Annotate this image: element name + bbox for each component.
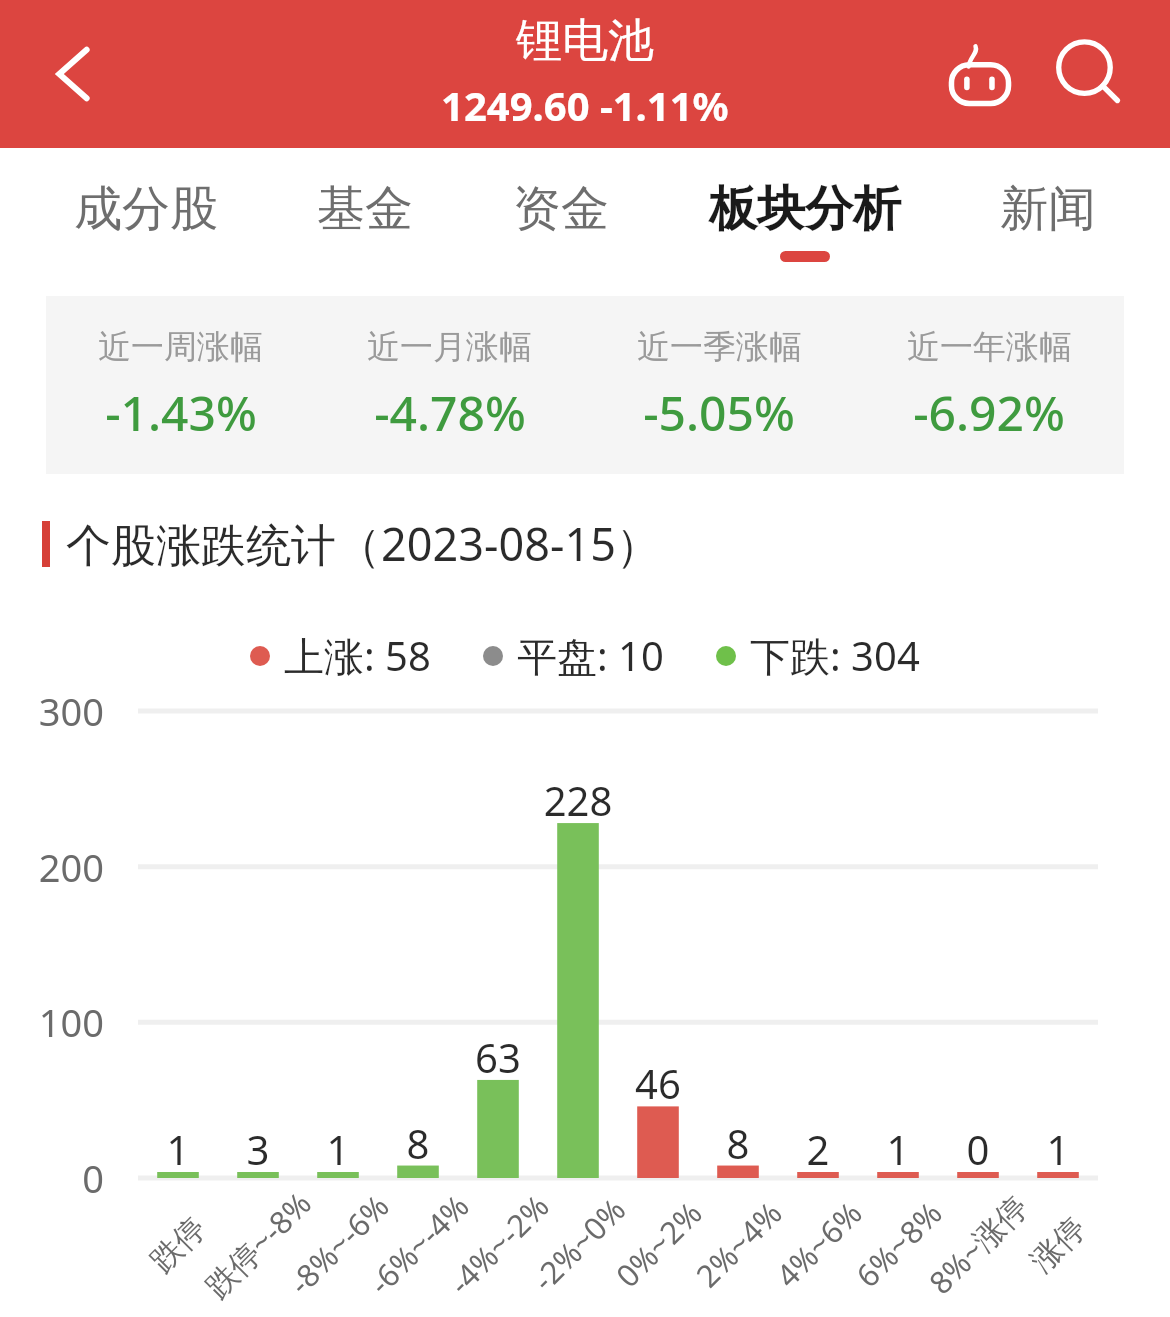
staticText: 近一月涨幅 xyxy=(367,326,532,368)
staticText: 近一季涨幅 xyxy=(637,326,802,368)
button[interactable]: 近一季涨幅 xyxy=(584,326,854,445)
button[interactable]: 上涨: 58 xyxy=(250,628,431,683)
button[interactable]: 板块分析 xyxy=(697,169,913,272)
staticText: 近一周涨幅 xyxy=(98,326,263,368)
button[interactable]: 下跌: 304 xyxy=(716,628,920,683)
staticText: 46 xyxy=(603,1056,713,1110)
staticText: 228 xyxy=(523,773,633,827)
staticText: 8 xyxy=(683,1116,793,1170)
staticText: -8%~-6% xyxy=(279,1185,398,1303)
staticText: 2 xyxy=(763,1122,873,1176)
staticText: 跌停~-8% xyxy=(196,1182,320,1306)
staticText: -6.92% xyxy=(913,380,1065,445)
button[interactable]: 近一周涨幅 xyxy=(46,326,315,445)
staticText: 0%~2% xyxy=(606,1192,710,1296)
button[interactable]: AI assistant xyxy=(934,28,1026,120)
staticText: 基金 xyxy=(317,179,413,239)
staticText: 1 xyxy=(123,1122,233,1176)
staticText: 2%~4% xyxy=(686,1192,790,1296)
staticText: -2%~0% xyxy=(523,1188,634,1299)
staticText: -5.05% xyxy=(643,380,795,445)
staticText: 板块分析 xyxy=(709,179,901,239)
button[interactable]: 近一年涨幅 xyxy=(854,326,1124,445)
staticText: 63 xyxy=(443,1030,553,1084)
staticText: 跌停 xyxy=(142,1209,214,1280)
staticText: -1.43% xyxy=(105,380,257,445)
staticText: 0 xyxy=(923,1122,1033,1176)
staticText: 成分股 xyxy=(74,179,218,239)
staticText: 1 xyxy=(283,1122,393,1176)
staticText: 4%~6% xyxy=(766,1192,870,1296)
button[interactable]: 近一月涨幅 xyxy=(315,326,584,445)
staticText: 1249.60 -1.11% xyxy=(441,78,729,132)
staticText: 300 xyxy=(0,685,104,737)
staticText: -6%~-4% xyxy=(359,1185,478,1303)
button[interactable]: Back xyxy=(38,36,114,112)
staticText: 锂电池 xyxy=(516,12,654,70)
staticText: 3 xyxy=(203,1122,313,1176)
staticText: 8%~涨停 xyxy=(919,1185,1037,1303)
staticText: 资金 xyxy=(513,179,609,239)
staticText: -4%~-2% xyxy=(439,1185,558,1303)
staticText: 1 xyxy=(1003,1122,1113,1176)
button[interactable]: 基金 xyxy=(305,169,425,272)
staticText: 6%~8% xyxy=(846,1192,950,1296)
staticText: 200 xyxy=(0,841,104,893)
button[interactable]: 资金 xyxy=(501,169,621,272)
button[interactable]: Search xyxy=(1044,28,1136,120)
staticText: 1 xyxy=(843,1122,953,1176)
staticText: 100 xyxy=(0,996,104,1048)
staticText: 平盘: 10 xyxy=(517,628,664,683)
staticText: 近一年涨幅 xyxy=(907,326,1072,368)
staticText: 8 xyxy=(363,1116,473,1170)
button[interactable]: 平盘: 10 xyxy=(483,628,664,683)
button[interactable]: 新闻 xyxy=(988,169,1108,272)
staticText: 涨停 xyxy=(1022,1209,1094,1280)
staticText: 个股涨跌统计（2023-08-15） xyxy=(66,513,661,574)
staticText: 下跌: 304 xyxy=(750,628,920,683)
button[interactable]: 成分股 xyxy=(62,169,230,272)
staticText: 上涨: 58 xyxy=(284,628,431,683)
staticText: 新闻 xyxy=(1000,179,1096,239)
staticText: -4.78% xyxy=(374,380,526,445)
staticText: 0 xyxy=(0,1152,104,1204)
